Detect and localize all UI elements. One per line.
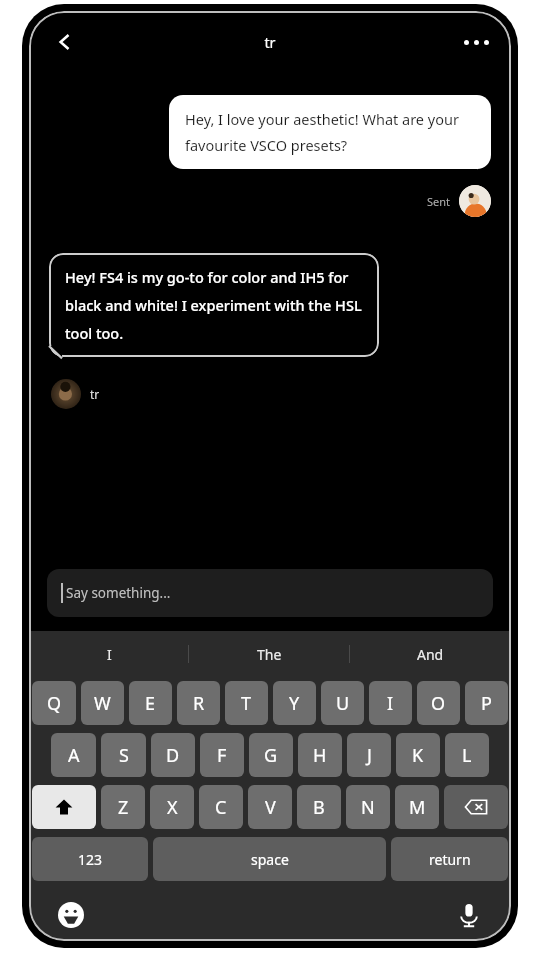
button[interactable]: J — [347, 733, 391, 777]
button[interactable]: Voice input — [449, 895, 489, 935]
button[interactable]: K — [396, 733, 440, 777]
staticText: U — [336, 691, 350, 716]
staticText: I — [387, 691, 394, 716]
button[interactable]: I — [369, 681, 412, 725]
staticText: C — [215, 795, 227, 820]
staticText: L — [462, 743, 472, 768]
button[interactable]: Shift — [32, 785, 96, 829]
staticText: V — [265, 795, 276, 820]
staticText: The — [257, 645, 282, 664]
button[interactable]: Hey, I love your aesthetic! What are you… — [169, 95, 491, 169]
button[interactable]: Z — [101, 785, 145, 829]
button[interactable]: E — [129, 681, 172, 725]
button[interactable]: L — [445, 733, 489, 777]
button[interactable]: Say something... — [47, 569, 493, 617]
button[interactable]: Q — [32, 681, 76, 725]
staticText: Say something... — [66, 584, 171, 602]
button[interactable]: I — [29, 631, 189, 677]
staticText: Hey! FS4 is my go-to for color and IH5 f… — [65, 267, 363, 343]
staticText: W — [94, 691, 111, 716]
staticText: M — [409, 795, 426, 820]
button[interactable]: Back — [43, 20, 87, 64]
staticText: O — [431, 691, 446, 716]
button[interactable]: A — [51, 733, 96, 777]
button[interactable]: Y — [273, 681, 316, 725]
staticText: 123 — [78, 850, 103, 869]
staticText: return — [429, 850, 471, 869]
button[interactable]: space — [153, 837, 386, 881]
staticText: X — [167, 795, 178, 820]
button[interactable]: Hey! FS4 is my go-to for color and IH5 f… — [49, 253, 379, 357]
button[interactable]: F — [200, 733, 244, 777]
staticText: D — [166, 743, 180, 768]
staticText: space — [251, 850, 289, 869]
staticText: H — [313, 743, 327, 768]
staticText: S — [119, 743, 129, 768]
button[interactable]: return — [391, 837, 508, 881]
staticText: G — [264, 743, 278, 768]
staticText: B — [313, 795, 325, 820]
staticText: Q — [47, 691, 62, 716]
staticText: Sent — [427, 194, 451, 209]
button[interactable]: The — [189, 631, 350, 677]
button[interactable]: H — [298, 733, 342, 777]
button[interactable]: Emoji — [51, 895, 91, 935]
button[interactable]: S — [101, 733, 146, 777]
button[interactable]: O — [417, 681, 460, 725]
button[interactable]: Your avatar — [459, 185, 491, 217]
staticText: Y — [289, 691, 300, 716]
button[interactable]: T — [225, 681, 268, 725]
button[interactable]: And — [350, 631, 511, 677]
button[interactable]: U — [321, 681, 364, 725]
staticText: T — [241, 691, 252, 716]
staticText: Z — [118, 795, 129, 820]
button[interactable]: M — [395, 785, 439, 829]
staticText: R — [193, 691, 205, 716]
staticText: I — [107, 645, 112, 664]
staticText: F — [217, 743, 227, 768]
button[interactable]: V — [248, 785, 292, 829]
staticText: Hey, I love your aesthetic! What are you… — [185, 109, 475, 155]
button[interactable]: G — [249, 733, 293, 777]
button[interactable]: Profile photo — [51, 379, 81, 409]
button[interactable]: X — [150, 785, 194, 829]
button[interactable]: P — [465, 681, 508, 725]
staticText: J — [367, 743, 372, 768]
staticText: tr — [264, 32, 276, 52]
button[interactable]: Backspace — [444, 785, 508, 829]
button[interactable]: 123 — [32, 837, 148, 881]
staticText: A — [68, 743, 80, 768]
button[interactable]: B — [297, 785, 341, 829]
button[interactable]: D — [151, 733, 195, 777]
button[interactable]: W — [81, 681, 124, 725]
button[interactable]: N — [346, 785, 390, 829]
staticText: tr — [90, 386, 100, 402]
staticText: K — [412, 743, 424, 768]
staticText: E — [145, 691, 156, 716]
button[interactable]: More options — [453, 19, 499, 65]
button[interactable]: C — [199, 785, 243, 829]
staticText: P — [481, 691, 492, 716]
staticText: And — [417, 645, 444, 664]
staticText: N — [361, 795, 375, 820]
button[interactable]: R — [177, 681, 220, 725]
